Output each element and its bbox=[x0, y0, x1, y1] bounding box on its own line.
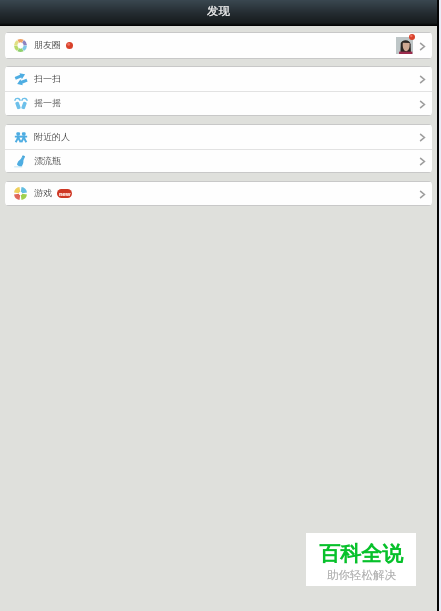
button[interactable]: 朋友圈 bbox=[5, 33, 432, 58]
staticText: 扫一扫 bbox=[34, 73, 61, 84]
staticText: new bbox=[59, 190, 71, 197]
button[interactable]: 漂流瓶 bbox=[5, 150, 432, 172]
staticText: 百科全说 bbox=[319, 541, 403, 567]
button[interactable]: 扫一扫 bbox=[5, 67, 432, 91]
button[interactable]: 游戏 bbox=[5, 182, 432, 205]
staticText: 摇一摇 bbox=[34, 97, 61, 108]
staticText: 游戏 bbox=[34, 187, 52, 198]
staticText: 漂流瓶 bbox=[34, 155, 61, 166]
staticText: 助你轻松解决 bbox=[327, 568, 396, 582]
staticText: 朋友圈 bbox=[34, 39, 61, 50]
button[interactable]: 摇一摇 bbox=[5, 92, 432, 115]
staticText: 附近的人 bbox=[34, 131, 70, 142]
staticText: 发现 bbox=[207, 4, 230, 18]
button[interactable]: 附近的人 bbox=[5, 125, 432, 149]
